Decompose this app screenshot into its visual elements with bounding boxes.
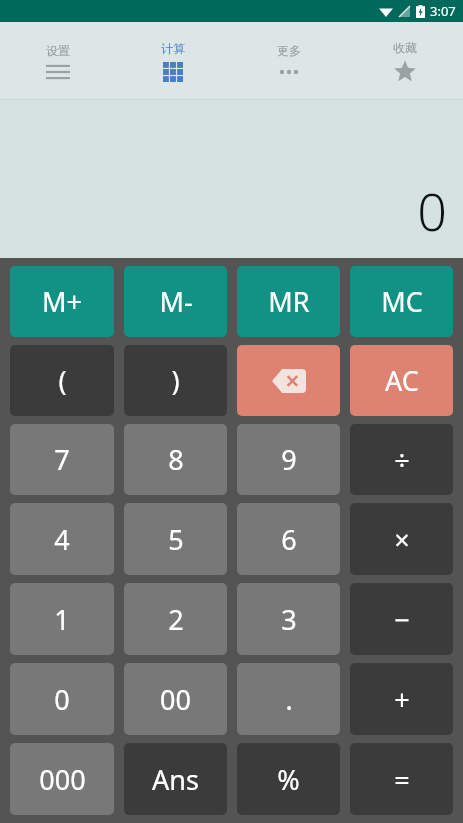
staticText: 6 [281, 521, 297, 558]
staticText: 8 [168, 441, 184, 478]
staticText: 设置 [46, 43, 70, 58]
staticText: MR [268, 283, 310, 320]
button[interactable]: 8 [124, 424, 227, 495]
staticText: 计算 [161, 41, 185, 56]
button[interactable]: . [237, 663, 340, 735]
staticText: AC [385, 362, 419, 399]
staticText: M- [159, 283, 193, 320]
button[interactable]: 6 [237, 503, 340, 575]
button[interactable]: 000 [10, 743, 114, 815]
button[interactable]: = [350, 743, 453, 815]
button[interactable]: Backspace [237, 345, 340, 416]
staticText: 2 [168, 601, 184, 638]
button[interactable]: 00 [124, 663, 227, 735]
staticText: 3:07 [430, 2, 456, 20]
button[interactable]: M+ [10, 266, 114, 337]
button[interactable]: M- [124, 266, 227, 337]
staticText: − [394, 601, 410, 638]
button[interactable]: − [350, 583, 453, 655]
button[interactable]: × [350, 503, 453, 575]
staticText: 收藏 [393, 40, 417, 55]
button[interactable]: 2 [124, 583, 227, 655]
button[interactable]: % [237, 743, 340, 815]
button[interactable]: MC [350, 266, 453, 337]
button[interactable]: 1 [10, 583, 114, 655]
staticText: % [277, 761, 300, 798]
staticText: ( [58, 362, 67, 399]
staticText: M+ [42, 283, 82, 320]
button[interactable]: 4 [10, 503, 114, 575]
staticText: 7 [54, 441, 70, 478]
button[interactable]: 3 [237, 583, 340, 655]
button[interactable]: 9 [237, 424, 340, 495]
staticText: 000 [39, 761, 86, 798]
button[interactable]: ( [10, 345, 114, 416]
staticText: = [394, 761, 410, 798]
button[interactable]: MR [237, 266, 340, 337]
button[interactable]: AC [350, 345, 453, 416]
staticText: ÷ [394, 441, 410, 478]
staticText: 0 [417, 175, 447, 246]
button[interactable]: 0 [10, 663, 114, 735]
staticText: 5 [168, 521, 184, 558]
button[interactable]: ) [124, 345, 227, 416]
button[interactable]: 5 [124, 503, 227, 575]
staticText: MC [381, 283, 423, 320]
button[interactable]: 收藏 [347, 22, 463, 100]
staticText: 4 [54, 521, 70, 558]
staticText: 0 [54, 681, 70, 718]
staticText: 00 [160, 681, 191, 718]
staticText: 更多 [277, 43, 301, 58]
button[interactable]: 7 [10, 424, 114, 495]
staticText: Ans [152, 761, 199, 798]
staticText: + [394, 681, 410, 718]
staticText: 9 [281, 441, 297, 478]
button[interactable]: + [350, 663, 453, 735]
staticText: 3 [281, 601, 297, 638]
staticText: × [394, 521, 410, 558]
button[interactable]: 计算 [115, 22, 231, 100]
button[interactable]: 更多 [231, 22, 347, 100]
button[interactable]: ÷ [350, 424, 453, 495]
staticText: ) [171, 362, 180, 399]
button[interactable]: Ans [124, 743, 227, 815]
button[interactable]: 设置 [0, 22, 115, 100]
staticText: . [285, 681, 293, 718]
staticText: 1 [54, 601, 70, 638]
